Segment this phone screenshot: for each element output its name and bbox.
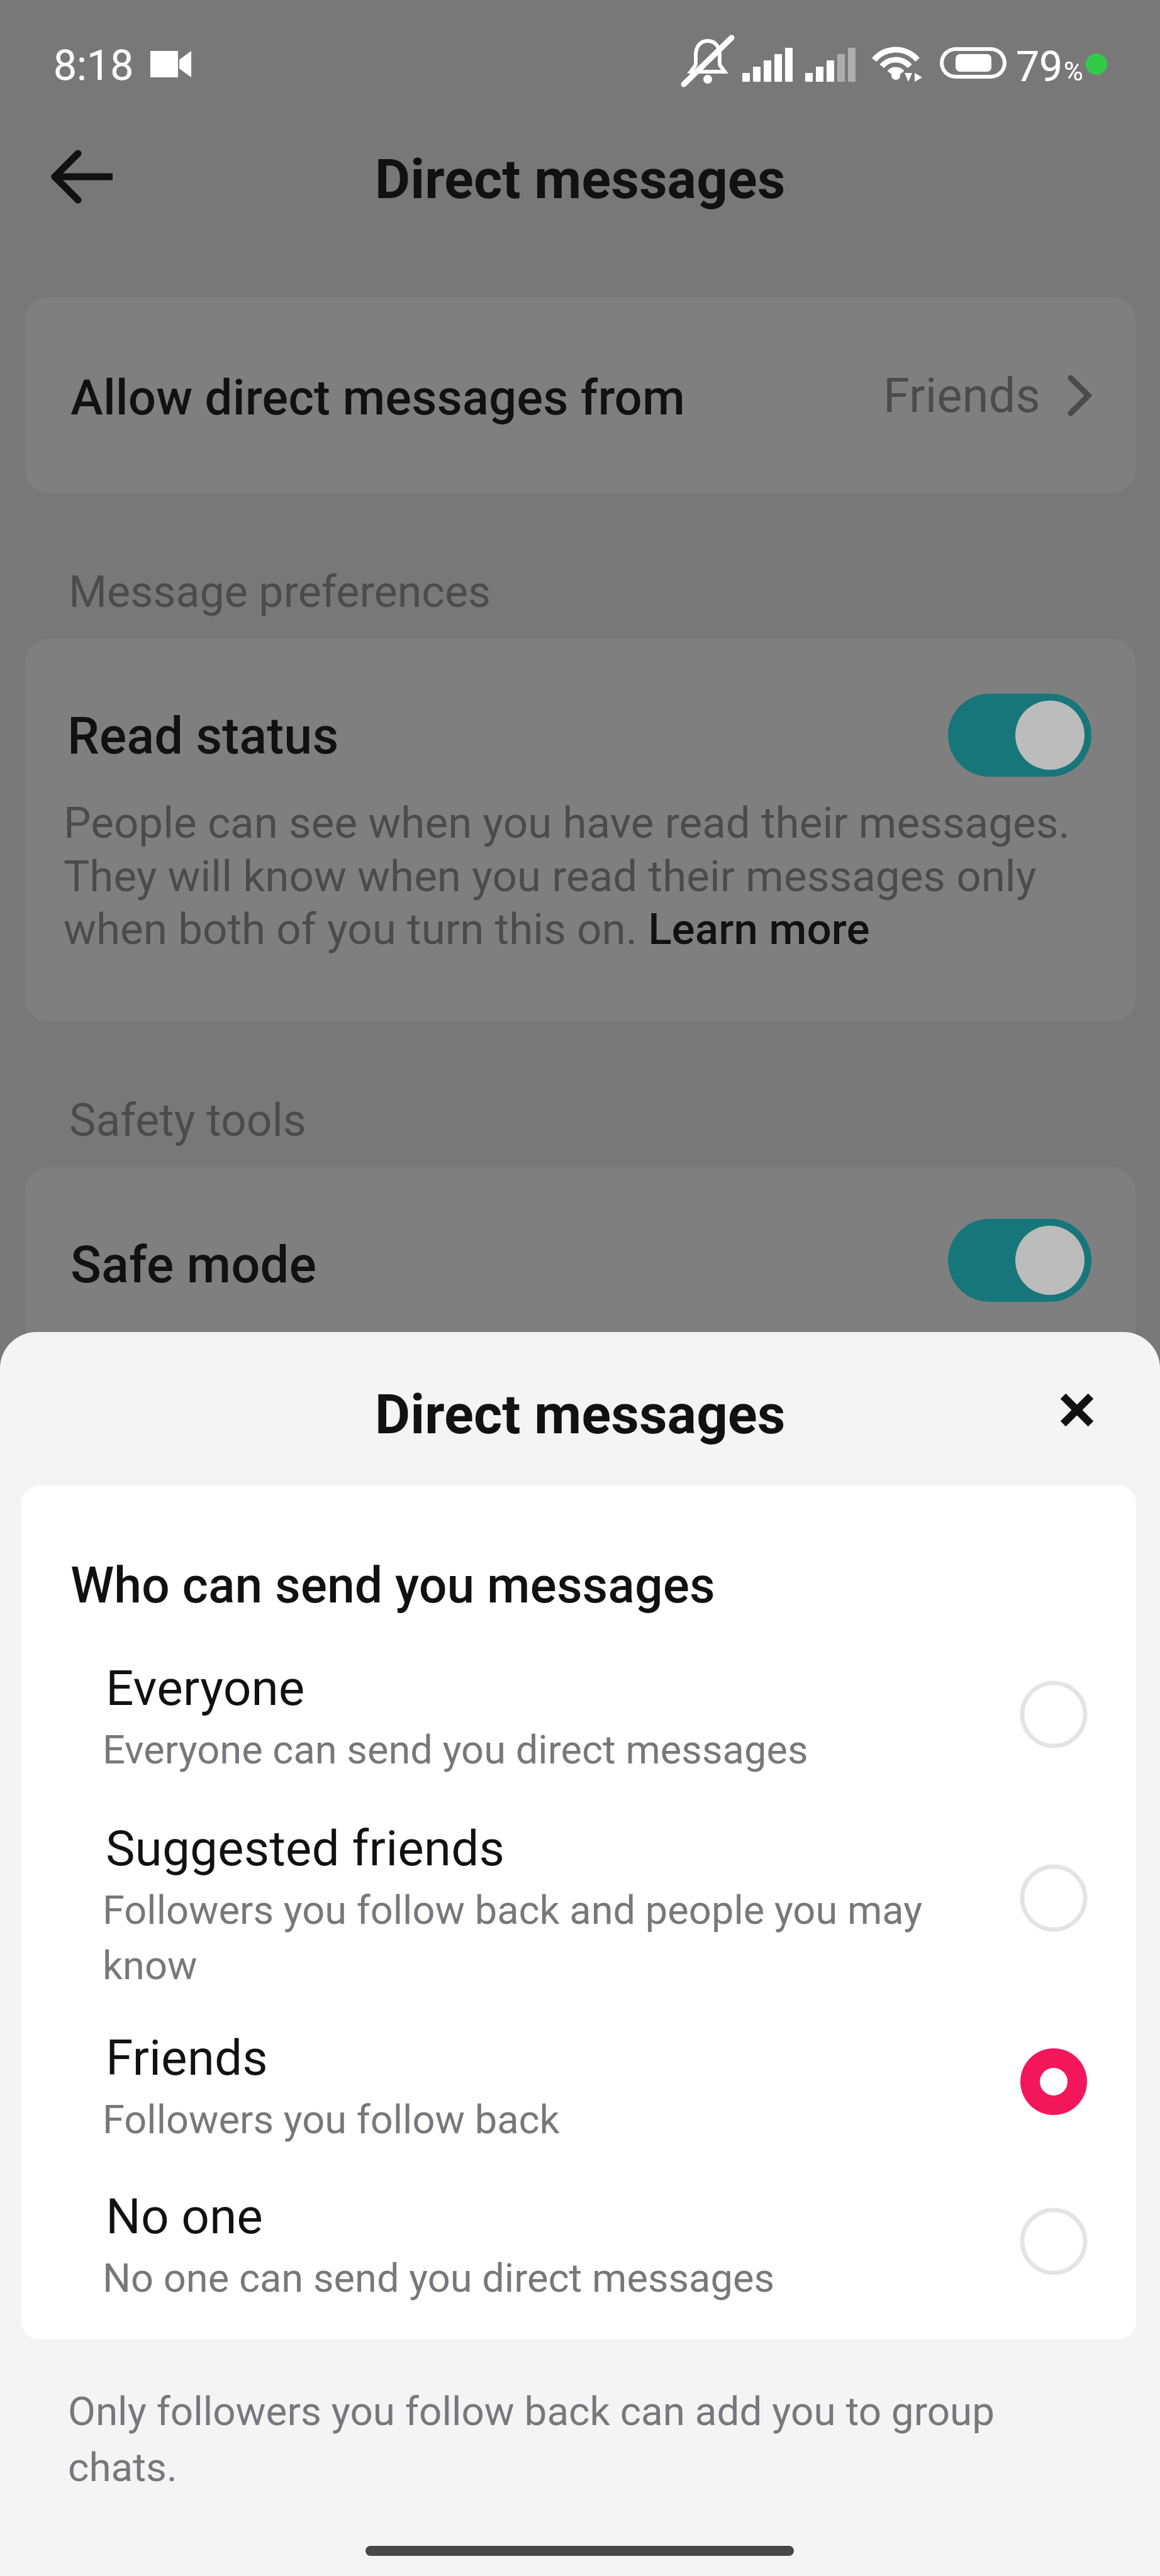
staticText: Followers you follow back and people you… xyxy=(103,1887,939,1989)
staticText: Friends xyxy=(883,367,1040,423)
button[interactable]: No one xyxy=(21,2170,1136,2324)
staticText: Safety tools xyxy=(69,1094,306,1147)
staticText: Direct messages xyxy=(0,147,1160,211)
button[interactable]: Allow direct messages from xyxy=(25,297,1135,492)
staticText: Suggested friends xyxy=(106,1819,505,1877)
button[interactable]: Toggle xyxy=(948,694,1091,777)
button[interactable]: Suggested friends xyxy=(21,1802,1136,2009)
button[interactable]: Close xyxy=(1044,1377,1110,1443)
staticText: Allow direct messages from xyxy=(70,369,685,426)
button[interactable]: Toggle xyxy=(948,1219,1091,1302)
staticText: Read status xyxy=(67,706,339,766)
button[interactable]: Friends xyxy=(21,2011,1136,2166)
staticText: Friends xyxy=(106,2029,268,2087)
staticText: No one xyxy=(106,2187,263,2245)
staticText: Followers you follow back xyxy=(103,2096,939,2143)
staticText: Direct messages xyxy=(0,1382,1160,1446)
staticText: Everyone xyxy=(106,1659,305,1717)
staticText: 8:18 xyxy=(53,42,134,90)
button[interactable]: Back xyxy=(35,129,130,225)
staticText: 79 xyxy=(1016,43,1063,91)
staticText: Message preferences xyxy=(69,566,491,618)
staticText: % xyxy=(1064,56,1083,87)
staticText: People can see when you have read their … xyxy=(64,797,1095,954)
button[interactable]: Everyone xyxy=(21,1641,1136,1796)
staticText: Everyone can send you direct messages xyxy=(103,1726,939,1773)
staticText: No one can send you direct messages xyxy=(103,2255,939,2301)
staticText: Only followers you follow back can add y… xyxy=(68,2388,1037,2490)
staticText: Safe mode xyxy=(70,1235,316,1295)
staticText: Who can send you messages xyxy=(70,1557,715,1614)
